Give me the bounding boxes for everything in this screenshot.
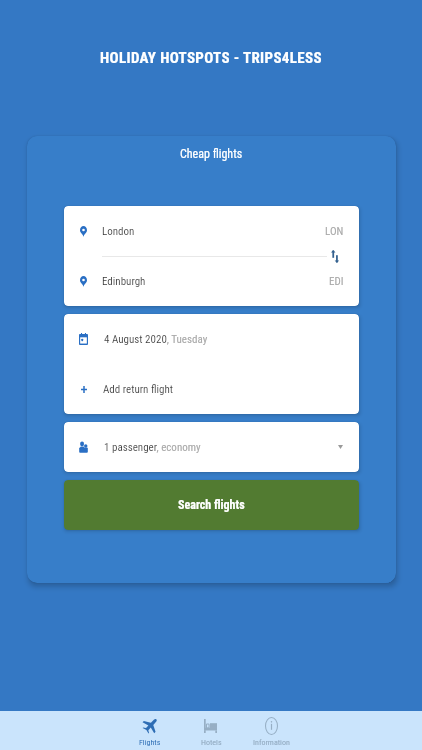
- staticText: LON: [325, 225, 344, 238]
- button[interactable]: Information: [241, 711, 301, 750]
- button[interactable]: Add return flight: [81, 364, 359, 414]
- other: Information: [265, 717, 278, 735]
- button[interactable]: Hotels: [181, 711, 241, 750]
- other: Hotels: [204, 719, 217, 733]
- staticText: Search flights: [178, 498, 245, 512]
- button[interactable]: Search flights: [64, 480, 359, 530]
- staticText: Add return flight: [103, 383, 174, 396]
- staticText: Information: [253, 738, 290, 747]
- button[interactable]: Edinburgh: [80, 256, 344, 306]
- staticText: 4 August 2020, Tuesday: [104, 333, 208, 346]
- other: Flights: [143, 717, 159, 733]
- button[interactable]: 4 August 2020, Tuesday: [79, 314, 359, 364]
- staticText: Cheap flights: [180, 147, 243, 161]
- staticText: HOLIDAY HOTSPOTS - TRIPS4LESS: [100, 49, 322, 67]
- button[interactable]: Swap origin and destination: [324, 245, 346, 267]
- staticText: Hotels: [201, 738, 222, 747]
- staticText: EDI: [329, 275, 344, 288]
- staticText: London: [102, 225, 135, 238]
- button[interactable]: Flights: [120, 711, 180, 750]
- button[interactable]: London: [80, 206, 344, 256]
- staticText: 1 passenger, economy: [104, 441, 201, 454]
- staticText: Edinburgh: [102, 275, 146, 288]
- staticText: Flights: [139, 738, 161, 747]
